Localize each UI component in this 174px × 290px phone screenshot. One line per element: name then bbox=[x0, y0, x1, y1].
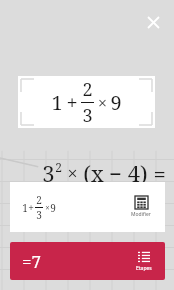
button[interactable]: Close bbox=[141, 10, 165, 34]
staticText: 3 bbox=[42, 158, 55, 188]
staticText: 3 bbox=[36, 208, 42, 222]
staticText: + bbox=[66, 89, 78, 116]
staticText: 9 bbox=[50, 201, 56, 215]
staticText: (x − 4) = bbox=[83, 158, 166, 188]
staticText: × bbox=[67, 161, 78, 186]
staticText: 9 bbox=[110, 89, 122, 116]
staticText: =7 bbox=[22, 250, 42, 273]
staticText: 3 bbox=[82, 103, 93, 128]
staticText: 1 bbox=[51, 89, 63, 116]
button[interactable]: Modifier bbox=[127, 192, 155, 222]
staticText: 2 bbox=[36, 193, 42, 207]
staticText: × bbox=[45, 202, 50, 213]
staticText: × bbox=[98, 92, 107, 114]
staticText: + bbox=[28, 201, 34, 215]
staticText: Etapes bbox=[136, 265, 152, 272]
button[interactable]: 1 bbox=[10, 182, 165, 232]
button[interactable]: Etapes bbox=[133, 248, 155, 275]
staticText: Modifier bbox=[131, 211, 151, 218]
button[interactable]: 1 bbox=[18, 76, 155, 128]
staticText: 1 bbox=[22, 201, 28, 215]
button[interactable]: =7 bbox=[10, 242, 165, 280]
staticText: 2 bbox=[55, 159, 62, 175]
staticText: 2 bbox=[82, 77, 93, 102]
